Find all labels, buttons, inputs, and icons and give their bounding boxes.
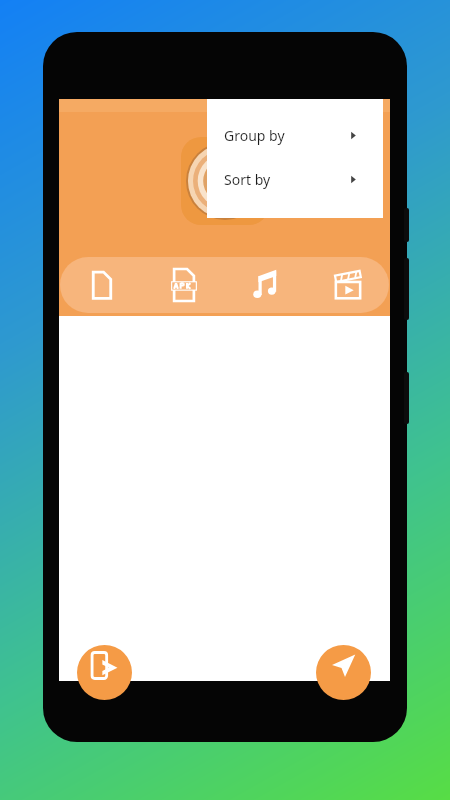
- button[interactable]: Receive files: [77, 645, 132, 700]
- staticText: Group by: [224, 126, 285, 145]
- button[interactable]: Videos: [307, 257, 389, 313]
- staticText: Sort by: [224, 170, 271, 189]
- button[interactable]: Documents: [60, 257, 143, 313]
- button[interactable]: Sort by: [207, 157, 383, 201]
- button[interactable]: Group by: [207, 113, 383, 157]
- button[interactable]: Music: [225, 257, 307, 313]
- button[interactable]: APK files: [143, 257, 225, 313]
- button[interactable]: Send files: [316, 645, 371, 700]
- button[interactable]: App logo: [181, 137, 269, 225]
